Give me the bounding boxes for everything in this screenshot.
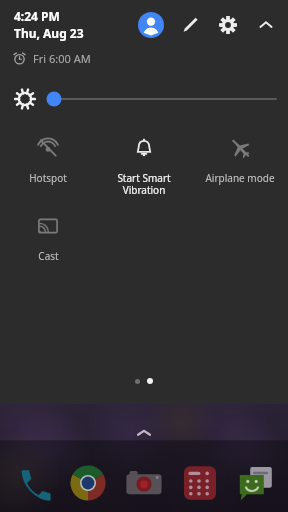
button[interactable]: Messages [232,460,278,506]
staticText: Hotspot [29,171,67,185]
staticText: Cast [38,249,59,263]
button[interactable]: Phone [10,460,56,506]
staticText: 4:24 PM [14,8,60,24]
button[interactable]: Hotspot [0,132,96,200]
button[interactable]: Expand [133,422,155,444]
staticText: Airplane mode [205,171,275,185]
button[interactable]: Edit [178,13,202,37]
button[interactable]: Chrome [65,460,111,506]
button[interactable]: Camera [121,460,167,506]
button[interactable]: Brightness [46,88,276,110]
button[interactable]: Cast [0,210,96,278]
button[interactable]: Collapse [254,13,278,37]
staticText: Thu, Aug 23 [14,25,84,41]
button[interactable]: Settings [216,13,240,37]
button[interactable]: User account [138,12,164,38]
staticText: Start Smart Vibration [117,171,171,197]
button[interactable]: Calculator [177,460,223,506]
button[interactable]: Start Smart Vibration [96,132,192,200]
button[interactable]: Airplane mode [192,132,288,200]
staticText: Fri 6:00 AM [33,51,91,66]
